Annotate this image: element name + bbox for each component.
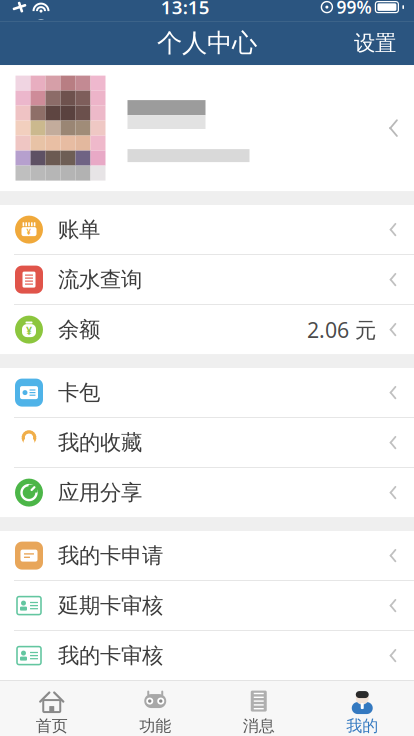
staticText: 2.06 元 (307, 315, 376, 344)
staticText: 账单 (58, 216, 100, 243)
button[interactable]: 延期卡审核 (0, 581, 414, 631)
staticText: 功能 (139, 716, 171, 736)
staticText: 消息 (243, 716, 275, 736)
button[interactable]: 我的卡审核 (0, 631, 414, 680)
staticText: 我的卡申请 (58, 542, 163, 569)
staticText: ¥ (26, 323, 32, 338)
button[interactable]: 消息 (207, 682, 310, 736)
button[interactable]: 设置 (340, 20, 410, 66)
button[interactable]: 我的收藏 (0, 418, 414, 468)
button[interactable] (0, 65, 414, 191)
staticText: 13:15 (161, 0, 210, 19)
button[interactable]: 我的 (310, 682, 414, 736)
staticText: 我的收藏 (58, 429, 142, 456)
staticText: 我的 (346, 716, 378, 736)
button[interactable]: 流水查询 (0, 255, 414, 305)
button[interactable]: 功能 (103, 682, 207, 736)
staticText: 99% (336, 0, 371, 19)
button[interactable]: 首页 (0, 682, 103, 736)
button[interactable]: ¥ (0, 205, 414, 255)
staticText: 应用分享 (58, 479, 142, 506)
staticText: ¥ (26, 226, 31, 237)
button[interactable]: 我的卡申请 (0, 531, 414, 581)
staticText: 首页 (36, 716, 68, 736)
button[interactable]: 卡包 (0, 368, 414, 418)
staticText: 余额 (58, 316, 100, 343)
staticText: 卡包 (58, 379, 100, 406)
button[interactable]: 应用分享 (0, 468, 414, 517)
staticText: 个人中心 (157, 27, 257, 59)
button[interactable]: ¥ (0, 305, 414, 354)
staticText: 设置 (354, 30, 396, 56)
staticText: 流水查询 (58, 266, 142, 293)
staticText: 延期卡审核 (58, 592, 163, 619)
staticText: 我的卡审核 (58, 642, 163, 669)
